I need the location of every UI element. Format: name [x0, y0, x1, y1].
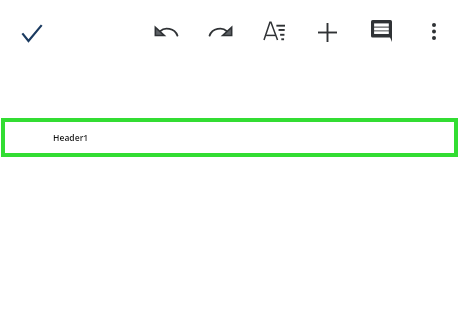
button[interactable]: Undo [145, 10, 187, 52]
button[interactable]: Text formatting [253, 10, 295, 52]
button[interactable]: Redo [199, 10, 241, 52]
button[interactable]: Done [11, 12, 53, 54]
button[interactable]: Header1 [1, 118, 458, 157]
staticText: Header1 [53, 132, 89, 144]
button[interactable]: Insert [306, 11, 348, 53]
button[interactable]: More options [413, 10, 455, 52]
button[interactable]: Comments [360, 10, 402, 52]
